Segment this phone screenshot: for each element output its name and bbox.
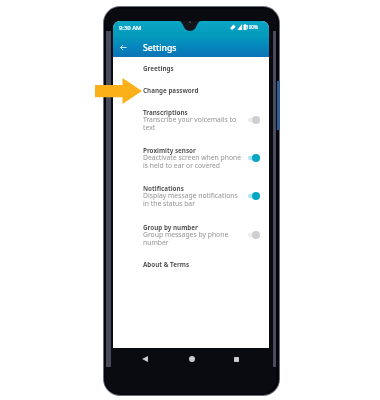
staticText: Proximity sensor [143, 146, 196, 155]
button[interactable]: Back [139, 353, 151, 365]
staticText: Group messages by phone number [143, 230, 229, 247]
staticText: Settings [143, 42, 177, 54]
staticText: 9:30 AM [119, 24, 142, 32]
staticText: Transcriptions [143, 108, 188, 117]
staticText: Display message notifications in the sta… [143, 191, 238, 208]
staticText: Group by number [143, 223, 198, 232]
button[interactable]: Home [186, 353, 198, 365]
staticText: Greetings [143, 64, 174, 73]
staticText: Deactivate screen when phone is held to … [143, 153, 242, 170]
button[interactable]: Proximity sensor [113, 146, 269, 176]
staticText: About & Terms [143, 260, 190, 269]
button[interactable]: Transcriptions [113, 108, 269, 138]
staticText: 100% [246, 24, 259, 30]
staticText: Notifications [143, 184, 184, 193]
staticText: Transcribe your voicemails to text [143, 115, 237, 132]
button[interactable]: Recent apps [230, 353, 242, 365]
button[interactable]: Notifications [113, 184, 269, 214]
button[interactable]: Change password [113, 86, 269, 102]
button[interactable]: Greetings [113, 64, 269, 80]
button[interactable]: Navigate up [117, 41, 129, 53]
button[interactable]: About & Terms [113, 260, 269, 276]
staticText: Change password [143, 86, 199, 95]
button[interactable]: Group by number [113, 223, 269, 253]
